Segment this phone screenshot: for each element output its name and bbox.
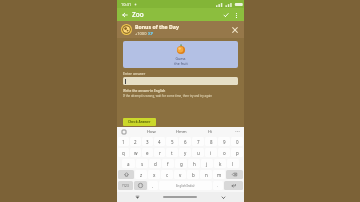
staticText: z	[140, 172, 143, 178]
button[interactable]: q	[118, 148, 129, 157]
button[interactable]: More suggestions	[234, 128, 241, 135]
button[interactable]: x	[148, 170, 160, 179]
button[interactable]: b	[187, 170, 199, 179]
staticText: l	[232, 161, 234, 167]
staticText: a	[127, 161, 130, 167]
staticText: h	[193, 161, 196, 167]
staticText: 4	[158, 139, 161, 145]
button[interactable]: 2	[130, 137, 141, 146]
staticText: n	[205, 172, 208, 178]
button[interactable]: u	[192, 148, 204, 157]
staticText: If the attempt is wrong, wait for some t…	[123, 94, 213, 98]
button[interactable]: y	[179, 148, 191, 157]
button[interactable]: 0	[231, 137, 243, 146]
button[interactable]: Home	[163, 196, 197, 198]
staticText: v	[179, 172, 182, 178]
staticText: 5	[171, 139, 174, 145]
button[interactable]: 9	[218, 137, 230, 146]
button[interactable]: z	[135, 170, 147, 179]
staticText: r	[159, 150, 161, 156]
staticText: g	[180, 161, 183, 167]
staticText: How	[147, 129, 156, 135]
staticText: c	[166, 172, 169, 178]
button[interactable]: 1	[118, 137, 129, 146]
button[interactable]: g	[175, 159, 187, 168]
staticText: f	[167, 161, 169, 167]
button[interactable]: Back	[120, 10, 130, 20]
button[interactable]: Confirm	[221, 10, 231, 20]
button[interactable]: f	[162, 159, 174, 168]
staticText: y	[184, 150, 187, 156]
button[interactable]: Hide keyboard	[132, 192, 142, 202]
button[interactable]: o	[218, 148, 230, 157]
button[interactable]: ,	[148, 181, 158, 190]
button[interactable]: r	[154, 148, 165, 157]
staticText: Check Answer	[128, 120, 151, 124]
button[interactable]: Space	[159, 181, 212, 190]
button[interactable]: Clipboard	[120, 128, 127, 135]
staticText: w	[134, 150, 138, 156]
staticText: q	[122, 150, 125, 156]
button[interactable]: m	[213, 170, 225, 179]
staticText: 1	[122, 139, 125, 145]
button[interactable]: Emoji	[134, 181, 147, 190]
staticText: Guess	[175, 56, 186, 61]
button[interactable]: v	[174, 170, 186, 179]
button[interactable]: 4	[154, 137, 165, 146]
staticText: Enter answer	[123, 71, 146, 76]
button[interactable]: t	[166, 148, 178, 157]
staticText: the fruit	[174, 61, 188, 66]
staticText: Hmm	[176, 129, 187, 135]
staticText: 8	[210, 139, 213, 145]
button[interactable]: Recent apps	[218, 192, 228, 202]
button[interactable]: n	[200, 170, 212, 179]
button[interactable]: 5	[166, 137, 178, 146]
staticText: 9	[223, 139, 226, 145]
staticText: u	[197, 150, 200, 156]
staticText: o	[223, 150, 226, 156]
button[interactable]: j	[201, 159, 213, 168]
staticText: .	[217, 183, 219, 189]
staticText: d	[154, 161, 157, 167]
button[interactable]: h	[188, 159, 200, 168]
button[interactable]: p	[231, 148, 243, 157]
staticText: Hi	[208, 129, 213, 135]
button[interactable]: 6	[179, 137, 191, 146]
staticText: x	[153, 172, 156, 178]
staticText: b	[192, 172, 195, 178]
button[interactable]: i	[205, 148, 217, 157]
button[interactable]: w	[130, 148, 141, 157]
button[interactable]: 3	[142, 137, 153, 146]
button[interactable]: Close	[230, 25, 240, 35]
staticText: English(India)	[176, 184, 195, 188]
button[interactable]: Enter	[224, 181, 243, 190]
button[interactable]: k	[214, 159, 226, 168]
button[interactable]: s	[136, 159, 148, 168]
staticText: p	[236, 150, 239, 156]
button[interactable]: Backspace	[226, 170, 243, 179]
staticText: e	[146, 150, 149, 156]
button[interactable]: More options	[231, 10, 241, 20]
button[interactable]: a	[122, 159, 135, 168]
staticText: 10:31	[121, 2, 132, 7]
button[interactable]: 7	[192, 137, 204, 146]
button[interactable]: .	[213, 181, 223, 190]
staticText: Zoo	[132, 10, 144, 19]
staticText: ,	[152, 183, 154, 189]
staticText: 2	[134, 139, 137, 145]
button[interactable]: l	[227, 159, 239, 168]
staticText: 0	[236, 139, 239, 145]
button[interactable]: Shift	[118, 170, 134, 179]
button[interactable]: e	[142, 148, 153, 157]
button[interactable]: ?123	[118, 181, 133, 190]
staticText: Bonus of the Day	[135, 23, 179, 30]
button[interactable]: 8	[205, 137, 217, 146]
button[interactable]: c	[161, 170, 173, 179]
button[interactable]	[123, 77, 238, 85]
staticText: s	[141, 161, 144, 167]
staticText: i	[210, 150, 212, 156]
button[interactable]: Check Answer	[123, 118, 156, 126]
staticText: +1000	[135, 31, 147, 36]
button[interactable]: d	[149, 159, 161, 168]
staticText: XP	[148, 31, 154, 36]
